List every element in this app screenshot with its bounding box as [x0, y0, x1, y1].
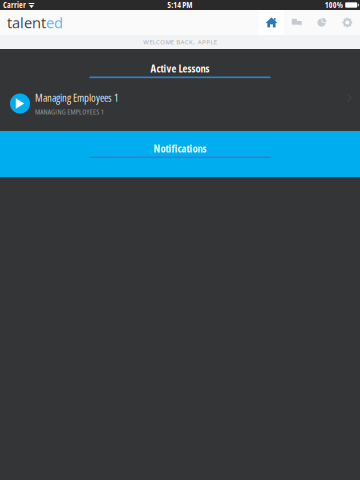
staticText: 100% [325, 0, 343, 10]
staticText: Notifications [153, 141, 206, 155]
button[interactable]: Settings [335, 10, 360, 35]
button[interactable]: Reports [309, 10, 335, 35]
staticText: Carrier [3, 0, 26, 10]
staticText: talent [7, 12, 46, 32]
staticText: WELCOME BACK, APPLE [143, 38, 217, 46]
staticText: MANAGING EMPLOYEES 1 [35, 107, 104, 117]
staticText: Managing Employees 1 [35, 90, 119, 105]
staticText: ed [46, 12, 63, 32]
button[interactable]: Managing Employees 1 [0, 87, 360, 120]
staticText: Active Lessons [150, 61, 209, 75]
staticText: 5:14 PM [167, 0, 192, 10]
button[interactable]: Home [259, 10, 284, 35]
button[interactable]: Messages [284, 10, 309, 35]
